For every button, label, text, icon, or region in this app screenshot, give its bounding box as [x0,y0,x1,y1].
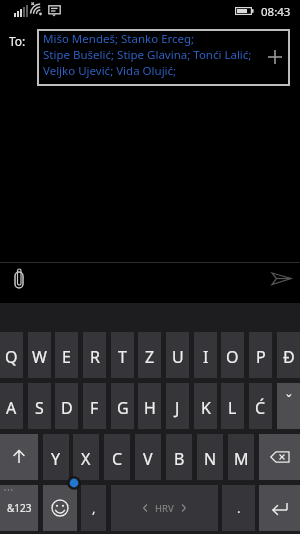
staticText: J [175,397,180,419]
button[interactable] [259,434,300,480]
button[interactable]: N [197,434,223,480]
staticText: F [90,397,99,419]
staticText: HRV [155,502,174,515]
staticText: Q [5,346,18,368]
staticText: T [118,346,127,368]
staticText: S [35,397,44,419]
staticText: Veljko Ujević; Vida Olujić; [43,63,177,79]
staticText: . [237,499,241,517]
staticText: ˇ [286,391,292,410]
button[interactable] [8,266,34,294]
staticText: H [144,397,156,419]
button[interactable]: C [104,434,130,480]
button[interactable]: T [111,332,134,378]
staticText: K [201,397,211,419]
staticText: Z [145,346,155,368]
staticText: A [6,397,17,419]
staticText: Y [51,448,61,470]
button[interactable] [259,485,300,531]
button[interactable] [43,485,77,531]
staticText: L [228,397,237,419]
staticText: C [112,448,123,470]
button[interactable]: K [194,383,217,429]
button[interactable] [264,266,294,290]
staticText: G [117,397,129,419]
staticText: R [90,346,100,368]
button[interactable]: Q [0,332,23,378]
staticText: Ć [255,397,266,419]
button[interactable]: L [221,383,244,429]
staticText: Stipe Bušelić; Stipe Glavina; Tonći Lali… [43,47,252,63]
button[interactable]: X [73,434,99,480]
button[interactable]: O [221,332,244,378]
staticText: I [203,346,209,368]
staticText: U [172,346,184,368]
button[interactable]: E [55,332,78,378]
button[interactable]: Đ [277,332,300,378]
staticText: E [62,346,71,368]
button[interactable]: J [166,383,189,429]
staticText: W [32,346,47,368]
staticText: B [174,448,185,470]
button[interactable]: HRV [111,485,218,531]
button[interactable]: . [222,485,255,531]
button[interactable]: F [83,383,106,429]
staticText: Mišo Mendeš; Stanko Erceg; [43,31,195,47]
button[interactable]: U [166,332,189,378]
staticText: D [61,397,73,419]
staticText: N [204,448,217,470]
button[interactable]: B [166,434,192,480]
button[interactable]: &123 [0,485,38,531]
button[interactable]: M [228,434,254,480]
staticText: X [81,448,91,470]
button[interactable]: Y [43,434,69,480]
button[interactable]: Z [138,332,161,378]
button[interactable]: W [28,332,51,378]
button[interactable]: A [0,383,23,429]
button[interactable]: R [83,332,106,378]
staticText: P [256,346,266,368]
button[interactable]: , [81,485,106,531]
button[interactable]: H [138,383,161,429]
button[interactable]: Mišo Mendeš; Stanko Erceg; [37,29,290,86]
button[interactable]: D [55,383,78,429]
staticText: &123 [7,501,32,515]
button[interactable]: Ć [249,383,272,429]
staticText: Đ [283,346,295,368]
button[interactable]: V [135,434,161,480]
staticText: , [92,499,96,517]
button[interactable]: P [249,332,272,378]
staticText: O [226,346,239,368]
staticText: To: [9,33,26,49]
button[interactable]: S [28,383,51,429]
staticText: V [143,448,153,470]
button[interactable] [0,434,38,480]
button[interactable]: I [194,332,217,378]
button[interactable]: ˇ [277,383,300,429]
staticText: M [234,448,249,470]
staticText: 08:43 [261,4,291,20]
button[interactable]: G [111,383,134,429]
